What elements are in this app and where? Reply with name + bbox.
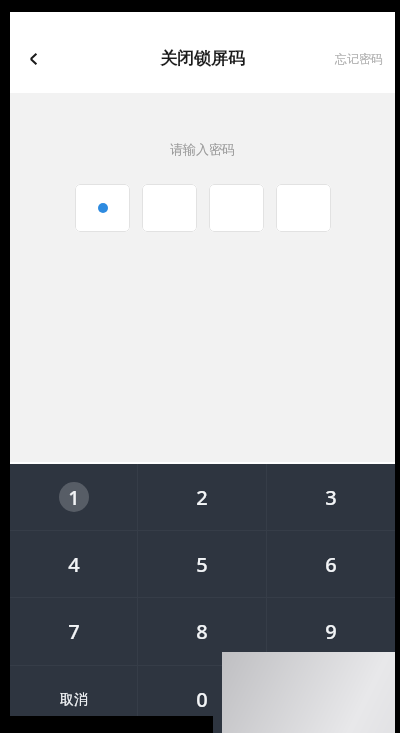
button[interactable]: Password digit 3 [209, 184, 264, 232]
staticText: 1 [68, 484, 80, 511]
staticText: 关闭锁屏码 [160, 48, 245, 69]
button[interactable]: Delete [267, 666, 395, 733]
button[interactable]: 取消 [10, 666, 137, 733]
button[interactable]: 0 [138, 666, 266, 733]
button[interactable]: Password digit 2 [142, 184, 197, 232]
button[interactable]: 9 [267, 598, 395, 665]
staticText: 忘记密码 [335, 51, 383, 66]
staticText: 7 [68, 618, 80, 645]
button[interactable]: Password digit 1 [75, 184, 130, 232]
button[interactable]: 5 [138, 531, 266, 597]
button[interactable]: 忘记密码 [323, 43, 395, 74]
button[interactable]: 1 [10, 464, 137, 530]
staticText: 5 [196, 551, 208, 578]
staticText: 0 [196, 686, 208, 713]
staticText: 2 [196, 484, 208, 511]
button[interactable]: 7 [10, 598, 137, 665]
button[interactable]: 6 [267, 531, 395, 597]
staticText: 8 [196, 618, 208, 645]
button[interactable]: 3 [267, 464, 395, 530]
staticText: 取消 [60, 691, 88, 709]
button[interactable]: Password digit 4 [276, 184, 331, 232]
staticText: 9 [325, 618, 337, 645]
button[interactable]: Back [10, 35, 58, 83]
staticText: 4 [68, 551, 80, 578]
button[interactable]: 4 [10, 531, 137, 597]
staticText: 3 [325, 484, 337, 511]
staticText: 请输入密码 [170, 141, 235, 157]
button[interactable]: 2 [138, 464, 266, 530]
button[interactable]: 8 [138, 598, 266, 665]
staticText: 6 [325, 551, 337, 578]
